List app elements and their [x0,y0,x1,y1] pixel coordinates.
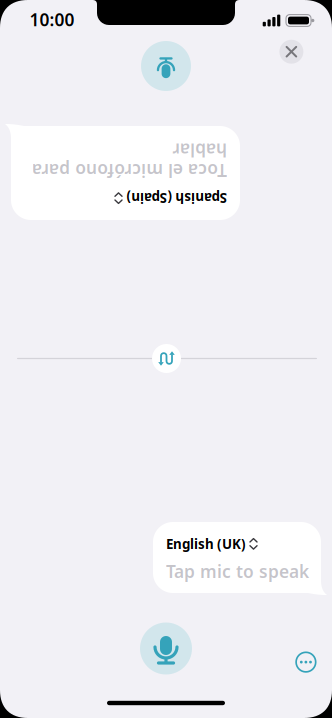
staticText: Toca el micrófono para [24,164,219,187]
staticText: English (UK) [166,535,246,553]
staticText: Tap mic to speak [166,560,309,583]
button[interactable]: Close [279,40,303,64]
button[interactable]: Tap mic to speak [140,622,192,674]
staticText: 10:00 [29,8,74,31]
button[interactable]: Tap to speak Spanish [141,41,191,91]
button[interactable]: Switch languages [152,344,181,373]
button[interactable]: More options [296,652,316,672]
button[interactable]: English (UK) [166,535,257,553]
